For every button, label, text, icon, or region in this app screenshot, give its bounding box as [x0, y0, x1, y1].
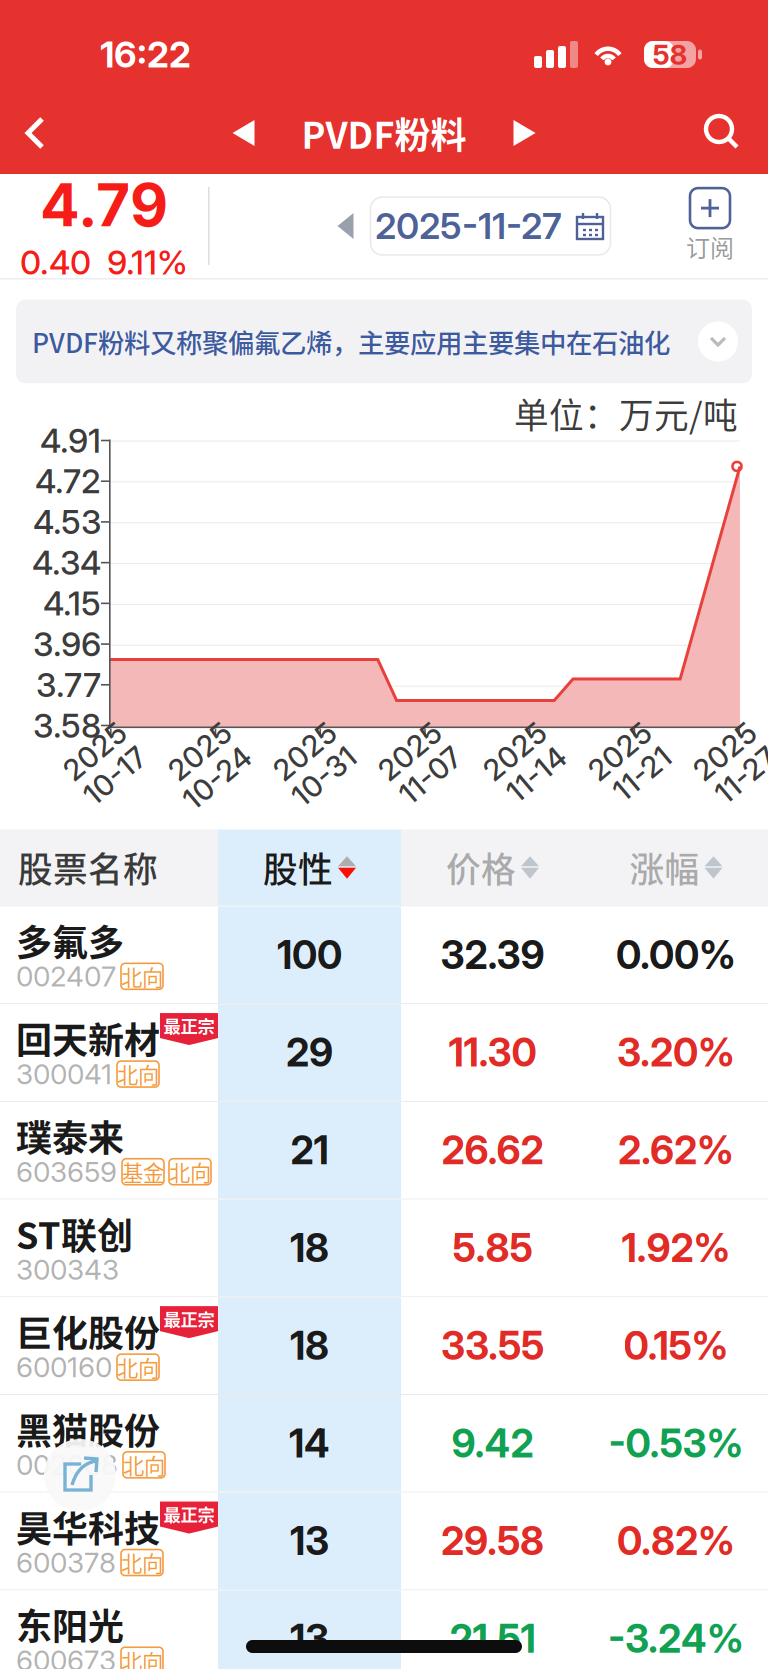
- button[interactable]: 昊华科技: [0, 1493, 768, 1589]
- staticText: 1.92%: [621, 1225, 730, 1271]
- staticText: 26.62: [441, 1127, 543, 1174]
- staticText: 10-17: [72, 770, 144, 806]
- staticText: 300041: [16, 1057, 112, 1091]
- staticText: 黑猫股份: [16, 1403, 160, 1455]
- staticText: 2025: [597, 739, 669, 774]
- staticText: 100: [277, 931, 342, 978]
- staticText: 3.96: [33, 624, 101, 664]
- staticText: PVDF粉料又称聚偏氟乙烯，主要应用主要集中在石油化: [32, 322, 670, 361]
- staticText: 2025: [177, 739, 249, 774]
- staticText: 21: [290, 1127, 328, 1174]
- button[interactable]: 巨化股份: [0, 1297, 768, 1394]
- button[interactable]: 东阳光: [0, 1590, 768, 1669]
- staticText: 单位：万元/吨: [514, 388, 738, 439]
- staticText: 订阅: [686, 229, 734, 264]
- staticText: 基金: [122, 1156, 164, 1187]
- staticText: 璞泰来: [16, 1110, 124, 1162]
- button[interactable]: PVDF粉料又称聚偏氟乙烯，主要应用主要集中在石油化: [16, 299, 752, 383]
- button[interactable]: Back: [8, 108, 78, 158]
- staticText: 0.15%: [623, 1322, 728, 1369]
- staticText: 2025: [492, 739, 564, 774]
- button[interactable]: 订阅: [672, 188, 748, 264]
- staticText: -0.53%: [608, 1420, 743, 1467]
- button[interactable]: 股性: [218, 829, 401, 905]
- staticText: 2025-11-27: [375, 204, 562, 248]
- button[interactable]: Previous day: [209, 210, 358, 242]
- staticText: 2025: [387, 739, 459, 774]
- staticText: 4.79: [40, 169, 168, 240]
- staticText: 9.42: [451, 1420, 533, 1467]
- staticText: 21.51: [449, 1615, 535, 1662]
- button[interactable]: Share: [44, 1439, 116, 1511]
- staticText: 4.91: [40, 420, 101, 461]
- staticText: 巨化股份: [16, 1305, 160, 1357]
- staticText: 11-14: [496, 770, 564, 806]
- staticText: 股票名称: [18, 842, 158, 893]
- staticText: 600160: [16, 1350, 112, 1384]
- staticText: 4.15: [43, 583, 101, 623]
- staticText: 14: [289, 1420, 330, 1467]
- staticText: 北向: [169, 1156, 211, 1187]
- staticText: 北向: [123, 1449, 165, 1480]
- staticText: 2.62%: [618, 1127, 734, 1174]
- staticText: 回天新材: [16, 1012, 160, 1064]
- button[interactable]: 璞泰来: [0, 1102, 768, 1199]
- staticText: 北向: [121, 1645, 163, 1669]
- staticText: 股性: [263, 842, 333, 893]
- staticText: 3.77: [36, 665, 101, 705]
- staticText: 最正宗: [163, 1306, 214, 1331]
- staticText: 0.40: [20, 242, 91, 283]
- staticText: ST联创: [16, 1207, 133, 1259]
- button[interactable]: Next: [512, 115, 536, 151]
- staticText: 北向: [121, 1547, 163, 1578]
- staticText: 29: [286, 1029, 333, 1076]
- staticText: 13: [290, 1518, 329, 1564]
- staticText: 002407: [16, 959, 116, 993]
- staticText: -3.24%: [608, 1615, 744, 1662]
- button[interactable]: Previous: [231, 115, 255, 151]
- staticText: 11-07: [388, 770, 459, 806]
- staticText: 3.20%: [617, 1029, 735, 1076]
- staticText: 2025: [282, 739, 354, 774]
- staticText: 10-24: [170, 770, 249, 806]
- staticText: 600673: [16, 1643, 116, 1669]
- staticText: 4.34: [32, 542, 101, 583]
- button[interactable]: 涨幅: [584, 829, 768, 905]
- staticText: 32.39: [440, 931, 544, 978]
- staticText: 昊华科技: [16, 1500, 160, 1553]
- staticText: 10-31: [280, 770, 354, 806]
- staticText: 18: [290, 1322, 329, 1369]
- button[interactable]: Search: [690, 108, 760, 158]
- staticText: 13: [290, 1615, 329, 1662]
- staticText: 4.72: [35, 461, 101, 501]
- button[interactable]: 价格: [401, 829, 584, 905]
- button[interactable]: ST联创: [0, 1200, 768, 1296]
- staticText: 涨幅: [629, 842, 699, 893]
- staticText: 11.30: [448, 1029, 536, 1076]
- button[interactable]: 2025-11-27: [358, 197, 610, 255]
- staticText: 11-27: [704, 770, 768, 806]
- staticText: 价格: [446, 842, 516, 893]
- staticText: 300343: [16, 1252, 119, 1286]
- staticText: 16:22: [100, 33, 191, 76]
- staticText: 603659: [16, 1155, 117, 1189]
- staticText: PVDF粉料: [301, 107, 466, 159]
- staticText: 600378: [16, 1546, 116, 1579]
- staticText: 0.82%: [617, 1518, 735, 1564]
- button[interactable]: 回天新材: [0, 1004, 768, 1101]
- staticText: 多氟多: [16, 914, 124, 966]
- staticText: 4.53: [33, 502, 101, 542]
- staticText: 3.58: [33, 705, 101, 746]
- button[interactable]: 黑猫股份: [0, 1395, 768, 1492]
- staticText: 5.85: [452, 1225, 532, 1271]
- staticText: 33.55: [441, 1322, 544, 1369]
- staticText: 2025: [72, 739, 144, 774]
- staticText: 9.11%: [107, 242, 188, 283]
- staticText: 2025: [702, 739, 768, 774]
- staticText: 002068: [16, 1448, 118, 1482]
- staticText: 最正宗: [163, 1501, 214, 1527]
- staticText: 18: [290, 1225, 329, 1271]
- staticText: 29.58: [441, 1518, 544, 1564]
- button[interactable]: 多氟多: [0, 906, 768, 1003]
- staticText: 东阳光: [16, 1598, 124, 1650]
